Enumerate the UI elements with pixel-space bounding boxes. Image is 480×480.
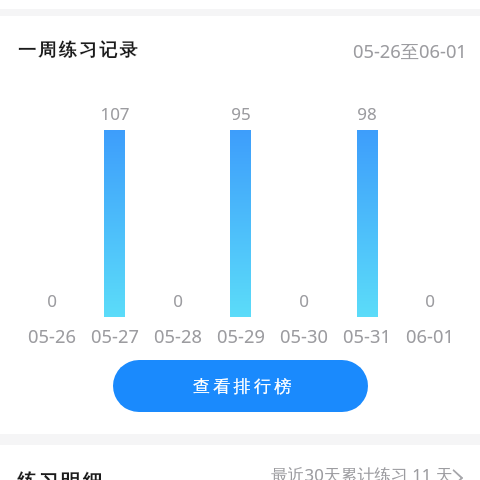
staticText: 05-27 (91, 323, 139, 348)
staticText: 一周练习记录 (18, 39, 140, 62)
other: 查看练习明细 (452, 470, 468, 480)
staticText: 查看排行榜 (193, 376, 295, 397)
staticText: 05-30 (280, 323, 328, 348)
button[interactable]: 查看排行榜 (113, 360, 368, 412)
staticText: 05-31 (343, 323, 391, 348)
staticText: 98 (357, 102, 377, 125)
staticText: 06-01 (406, 323, 454, 348)
staticText: 05-28 (154, 323, 202, 348)
staticText: 0 (173, 289, 183, 312)
staticText: 95 (231, 102, 251, 125)
staticText: 0 (425, 289, 435, 312)
staticText: 0 (47, 289, 57, 312)
staticText: 107 (100, 102, 130, 125)
staticText: 0 (299, 289, 309, 312)
staticText: 最近30天累计练习 11 天 (271, 463, 453, 480)
staticText: 05-26 (28, 323, 76, 348)
staticText: 05-29 (217, 323, 265, 348)
staticText: 练习明细 (17, 469, 105, 480)
button[interactable]: 练习明细 (0, 445, 480, 480)
staticText: 05-26至06-01 (353, 38, 467, 63)
